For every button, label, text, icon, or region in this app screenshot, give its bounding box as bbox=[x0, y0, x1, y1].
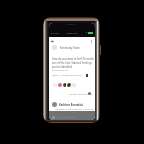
staticText: Write a comment bbox=[57, 116, 76, 119]
staticText: 9:41 ull bbox=[51, 31, 60, 34]
staticText: Oct 28 at 8:05 AM bbox=[52, 69, 68, 72]
button[interactable]: More options bbox=[88, 37, 95, 45]
staticText: Centered : I also Cried This, I'm Trying bbox=[55, 108, 94, 111]
button[interactable]: Reaction bbox=[53, 83, 57, 87]
staticText: Kontinuity Team bbox=[60, 46, 80, 49]
button[interactable]: Reaction bbox=[67, 83, 71, 87]
staticText: you've identified. bbox=[52, 65, 73, 69]
button[interactable]: Write a comment bbox=[49, 111, 95, 120]
button[interactable]: Reaction bbox=[58, 83, 62, 87]
button[interactable]: Reaction bbox=[72, 83, 76, 87]
staticText: How do you want to feel? Describe bbox=[52, 57, 94, 61]
button[interactable]: Reaction bbox=[63, 83, 67, 87]
staticText: See the most comments bbox=[69, 93, 93, 96]
staticText: Mon 8:24 bbox=[67, 31, 78, 34]
button[interactable]: Kontinuity Team avatar bbox=[52, 45, 57, 50]
staticText: one of the Core Stacked Feelings bbox=[52, 61, 92, 65]
staticText: Quote | To Rate the Core St… bbox=[52, 74, 84, 77]
button[interactable]: Back bbox=[49, 37, 56, 45]
staticText: Kathleen Barnabuk bbox=[59, 103, 84, 106]
